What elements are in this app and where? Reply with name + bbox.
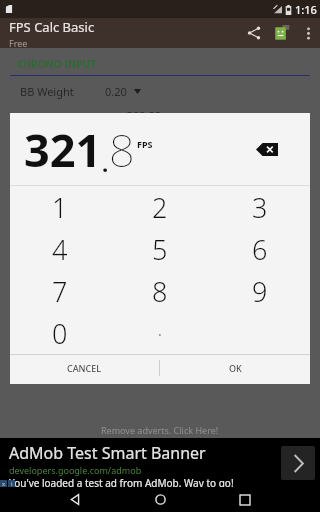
button[interactable]: App info [268, 19, 296, 47]
staticText: 4 [52, 231, 68, 268]
button[interactable]: More options [296, 21, 320, 45]
button[interactable]: Remove adverts. Click Here! [0, 422, 320, 438]
staticText: 8 [109, 119, 135, 180]
button[interactable]: CANCEL [10, 355, 159, 381]
staticText: 6 [252, 231, 268, 268]
button[interactable]: 5 [110, 228, 210, 270]
button[interactable]: OK [160, 355, 310, 381]
button[interactable]: Backspace [247, 132, 287, 166]
staticText: x [2, 480, 6, 487]
button[interactable]: 8 [110, 270, 210, 312]
staticText: FPS Calc Basic [9, 18, 95, 36]
staticText: 321 [24, 119, 102, 180]
staticText: You've loaded a test ad from AdMob. Way … [9, 476, 234, 487]
staticText: BB Weight [20, 84, 105, 99]
button[interactable]: Home [145, 487, 175, 512]
button[interactable]: 6 [210, 228, 310, 270]
staticText: developers.google.com/admob [9, 464, 142, 476]
button[interactable]: AdMob Test Smart Banner [0, 438, 320, 487]
button[interactable]: Share [240, 19, 268, 47]
staticText: 3 [252, 189, 268, 226]
staticText: 300.00 [105, 108, 161, 123]
staticText: CANCEL [67, 362, 102, 374]
staticText: . [102, 148, 109, 178]
button[interactable]: 9 [210, 270, 310, 312]
staticText: Remove adverts. Click Here! [101, 424, 219, 436]
button[interactable]: 2 [110, 186, 210, 228]
staticText: . [158, 321, 162, 340]
staticText: 8 [152, 273, 168, 310]
staticText: 0 [52, 315, 68, 352]
staticText: 2 [152, 189, 168, 226]
button[interactable]: 7 [10, 270, 110, 312]
button[interactable]: Recent apps [230, 487, 260, 512]
button[interactable]: 4 [10, 228, 110, 270]
staticText: Chrono FPS [14, 111, 105, 126]
staticText: 7 [52, 273, 68, 310]
button[interactable]: 3 [210, 186, 310, 228]
staticText: AdMob Test Smart Banner [9, 442, 206, 464]
button[interactable]: 1 [10, 186, 110, 228]
staticText: 5 [152, 231, 168, 268]
staticText: 1:16 [295, 2, 317, 17]
staticText: FPS [137, 138, 153, 150]
staticText: CHRONO INPUT [17, 57, 96, 71]
button[interactable]: Next [281, 446, 315, 480]
staticText: 1 [52, 189, 68, 226]
staticText: OK [229, 362, 242, 374]
staticText: i [11, 480, 13, 487]
staticText: 0.20 [105, 84, 127, 99]
button[interactable]: Back [60, 487, 90, 512]
staticText: Free [9, 37, 28, 48]
staticText: 9 [252, 273, 268, 310]
button[interactable]: 0 [10, 312, 110, 354]
